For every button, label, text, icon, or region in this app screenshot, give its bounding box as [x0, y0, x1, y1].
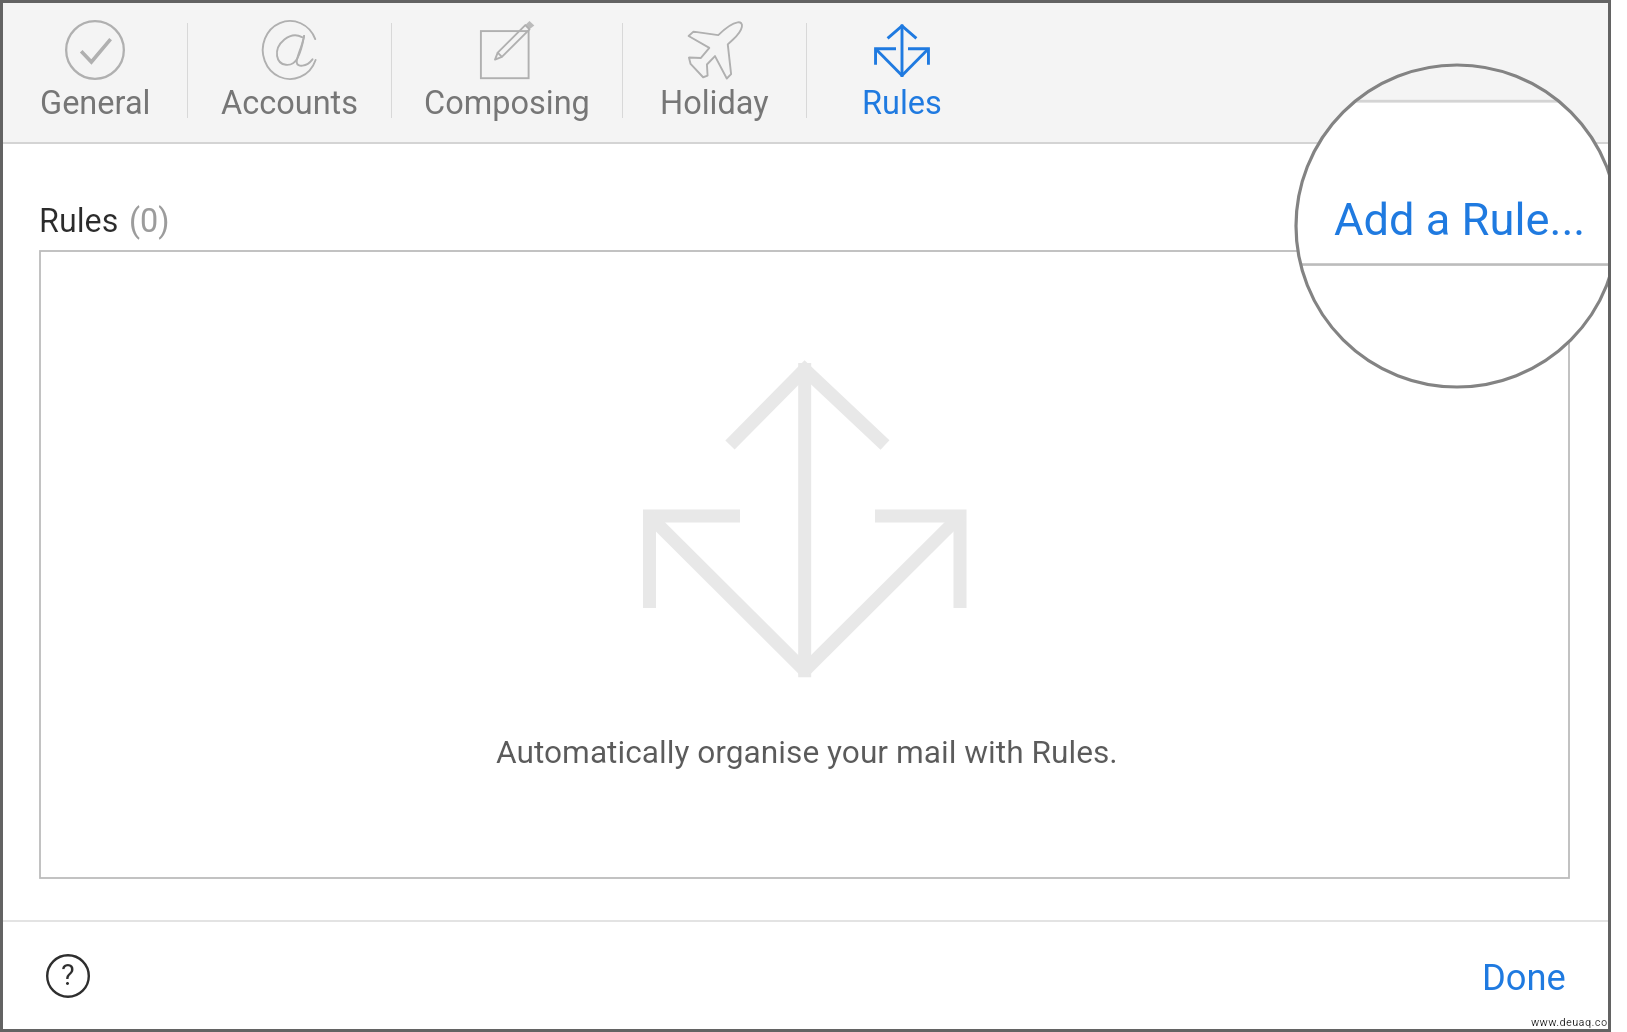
staticText: Rules [39, 202, 119, 240]
button[interactable]: Accounts [188, 3, 391, 142]
staticText: Done [1482, 956, 1566, 999]
staticText: Holiday [660, 84, 769, 122]
button[interactable]: General [3, 3, 187, 142]
button[interactable]: Add a Rule... [1334, 193, 1586, 246]
button[interactable]: Composing [392, 3, 622, 142]
button[interactable]: Done [1482, 956, 1566, 999]
staticText: ? [61, 958, 75, 992]
staticText: Accounts [221, 84, 359, 122]
staticText: www.deuaq.com [1531, 1016, 1618, 1029]
staticText: Add a Rule... [1376, 206, 1549, 242]
button[interactable]: Rules [807, 3, 997, 142]
button[interactable]: Holiday [623, 3, 806, 142]
staticText: General [40, 84, 151, 122]
button[interactable]: Help [46, 954, 90, 998]
staticText: Composing [424, 84, 590, 122]
button[interactable]: Add a Rule... [1376, 206, 1549, 242]
staticText: Rules [862, 84, 942, 122]
staticText: Automatically organise your mail with Ru… [496, 734, 1118, 771]
staticText: Add a Rule... [1334, 193, 1586, 246]
staticText: (0) [129, 202, 170, 240]
